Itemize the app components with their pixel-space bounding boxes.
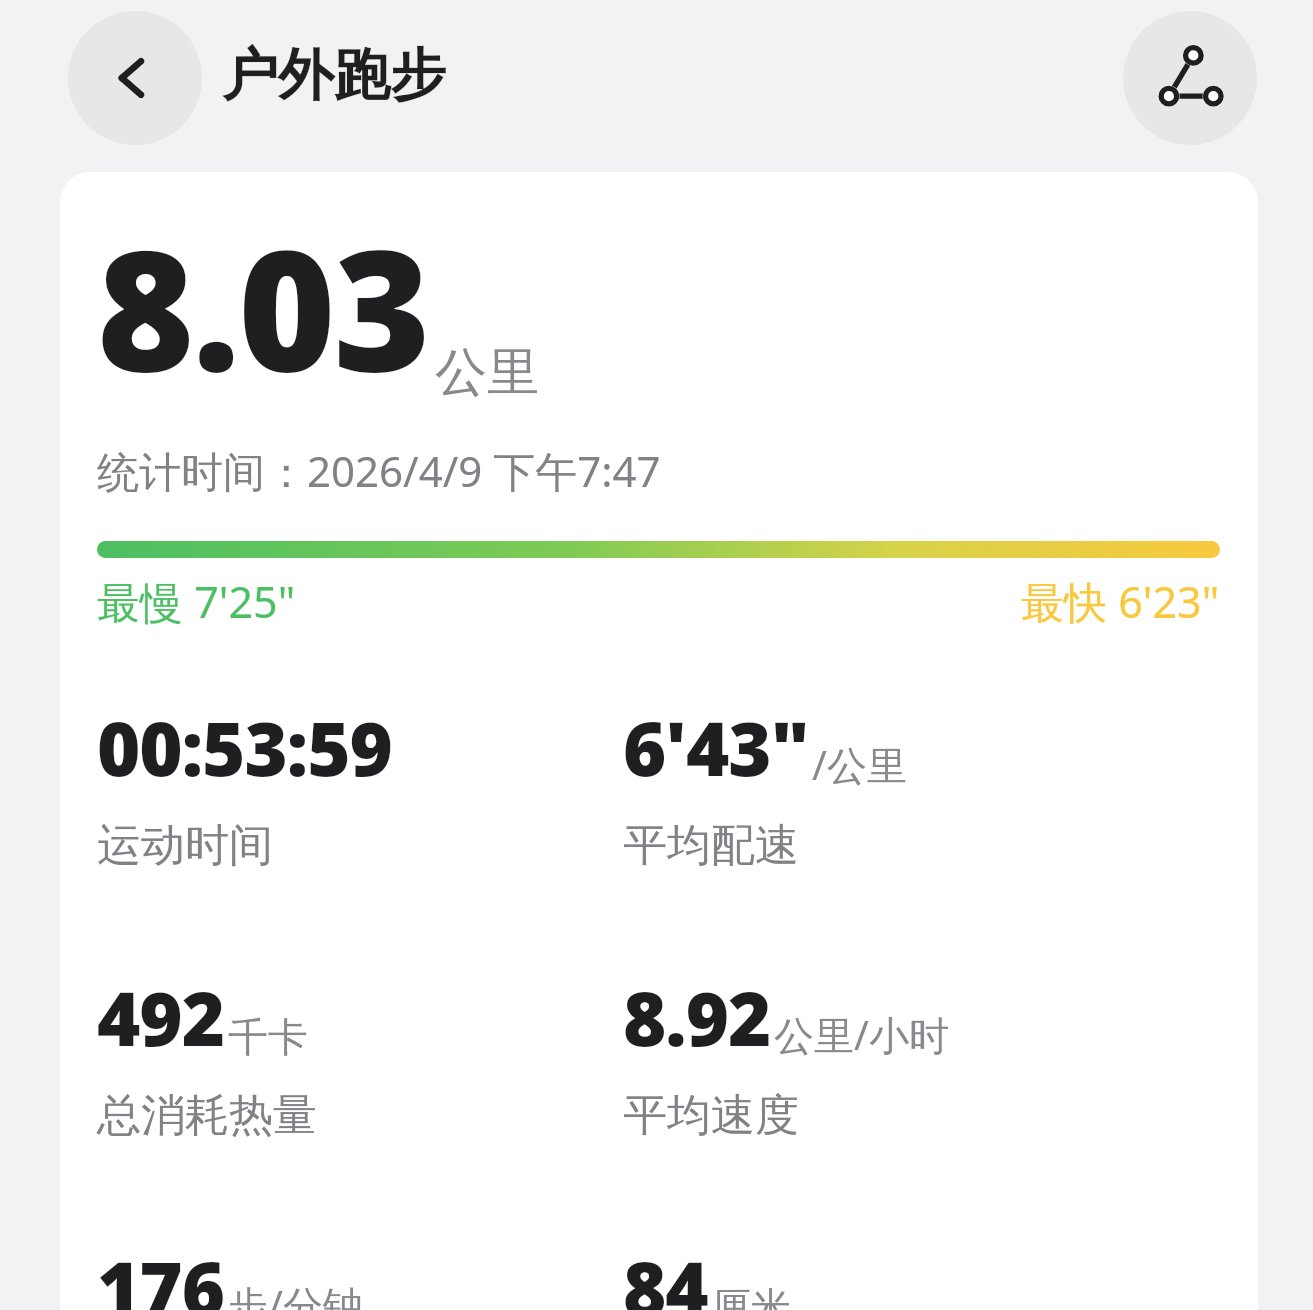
staticText: 平均速度 — [623, 1088, 799, 1143]
staticText: 千卡 — [228, 1012, 308, 1062]
staticText: 最慢 7'25" — [97, 572, 296, 631]
staticText: 运动时间 — [97, 818, 273, 873]
staticText: 公里/小时 — [774, 1007, 949, 1062]
button[interactable]: Back — [68, 11, 202, 145]
staticText: 平均配速 — [623, 818, 799, 873]
staticText: /公里 — [812, 737, 907, 792]
staticText: 公里 — [435, 340, 539, 406]
staticText: 176 — [97, 1237, 225, 1310]
staticText: 户外跑步 — [222, 40, 446, 111]
staticText: 8.92 — [623, 967, 771, 1068]
staticText: 步/分钟 — [228, 1277, 363, 1310]
staticText: 统计时间：2026/4/9 下午7:47 — [97, 442, 661, 499]
staticText: 492 — [97, 967, 225, 1068]
staticText: 8.03 — [97, 194, 429, 420]
staticText: 6'43" — [623, 697, 809, 798]
button[interactable]: Share — [1123, 11, 1257, 145]
staticText: 总消耗热量 — [97, 1088, 317, 1143]
staticText: 厘米 — [711, 1282, 791, 1310]
staticText: 00:53:59 — [97, 697, 392, 798]
staticText: 最快 6'23" — [1021, 572, 1220, 631]
staticText: 84 — [623, 1237, 708, 1310]
